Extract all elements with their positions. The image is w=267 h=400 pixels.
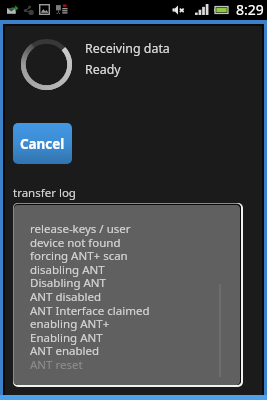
staticText: Cancel bbox=[20, 135, 65, 153]
staticText: Disabling ANT bbox=[30, 275, 106, 291]
staticText: ANT reset bbox=[30, 357, 83, 373]
staticText: disabling ANT bbox=[30, 262, 105, 278]
staticText: device not found bbox=[30, 235, 121, 251]
staticText: Receiving data bbox=[85, 40, 170, 57]
staticText: enabling ANT+ bbox=[30, 316, 110, 332]
staticText: transfer log bbox=[13, 185, 76, 201]
staticText: ANT Interface claimed bbox=[30, 303, 150, 319]
staticText: release-keys / user bbox=[30, 221, 131, 237]
staticText: Enabling ANT bbox=[30, 330, 103, 346]
staticText: ANT enabled bbox=[30, 343, 100, 359]
staticText: Ready bbox=[85, 61, 121, 78]
button[interactable]: Cancel bbox=[13, 123, 72, 164]
staticText: forcing ANT+ scan bbox=[30, 248, 128, 264]
staticText: ANT disabled bbox=[30, 289, 102, 305]
staticText: 8:29 bbox=[236, 0, 264, 19]
